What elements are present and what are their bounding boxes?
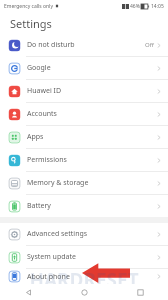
button[interactable]: Back	[0, 284, 56, 300]
button[interactable]: Huawei ID	[0, 80, 168, 102]
staticText: Battery	[27, 201, 51, 211]
button[interactable]: Permissions	[0, 149, 168, 171]
staticText: Off	[145, 41, 154, 49]
staticText: Memory & storage	[27, 178, 89, 188]
button[interactable]: Home	[56, 284, 112, 300]
button[interactable]: Accounts	[0, 103, 168, 125]
button[interactable]: Advanced settings	[0, 223, 168, 245]
staticText: 14:05	[151, 3, 164, 10]
staticText: System update	[27, 252, 76, 262]
button[interactable]: System update	[0, 246, 168, 268]
staticText: 46%	[130, 3, 140, 10]
staticText: Huawei ID	[27, 86, 61, 96]
staticText: Apps	[27, 132, 44, 142]
staticText: Advanced settings	[27, 229, 88, 239]
button[interactable]: Battery	[0, 195, 168, 217]
staticText: About phone	[27, 272, 70, 282]
button[interactable]: About phone	[0, 269, 168, 284]
button[interactable]: Apps	[0, 126, 168, 148]
button[interactable]: Do not disturb	[0, 34, 168, 56]
staticText: Permissions	[27, 155, 67, 165]
staticText: Google	[27, 63, 51, 73]
button[interactable]: Recent apps	[112, 284, 168, 300]
staticText: HARDRESET	[0, 267, 168, 293]
staticText: Do not disturb	[27, 40, 75, 50]
staticText: Emergency calls only	[4, 3, 53, 10]
staticText: Accounts	[27, 109, 57, 119]
staticText: Settings	[10, 16, 52, 31]
button[interactable]: Google	[0, 57, 168, 79]
button[interactable]: Memory & storage	[0, 172, 168, 194]
